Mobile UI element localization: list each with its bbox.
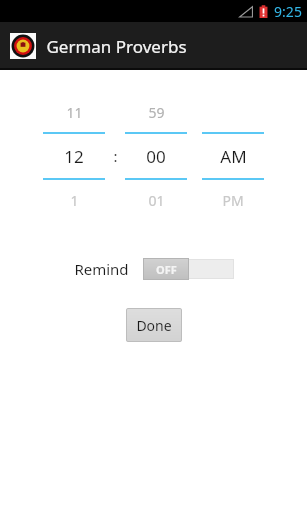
staticText: 59 (148, 103, 165, 122)
staticText: : (113, 146, 118, 166)
staticText: German Proverbs (46, 35, 187, 58)
staticText: PM (222, 191, 244, 210)
staticText: 9:25 (274, 2, 302, 21)
button[interactable]: AM (199, 92, 267, 220)
staticText: Remind (74, 259, 129, 279)
staticText: 00 (146, 145, 166, 168)
staticText: OFF (156, 262, 177, 277)
button[interactable]: Remind toggle, off (143, 258, 234, 280)
staticText: Done (136, 316, 172, 335)
staticText: 01 (148, 191, 165, 210)
staticText: 1 (70, 191, 79, 210)
staticText: 11 (66, 103, 83, 122)
button[interactable]: 11 (40, 92, 108, 220)
button[interactable]: Done (126, 308, 182, 342)
staticText: AM (220, 145, 247, 168)
button[interactable]: 59 (122, 92, 190, 220)
staticText: 12 (64, 145, 84, 168)
